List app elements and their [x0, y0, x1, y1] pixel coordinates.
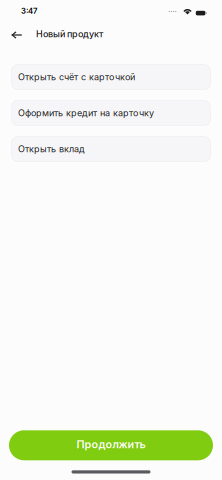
button[interactable]: Продолжить: [9, 430, 213, 460]
staticText: Продолжить: [76, 438, 145, 451]
button[interactable]: Открыть счёт с карточкой: [11, 64, 211, 90]
button[interactable]: Открыть вклад: [11, 136, 211, 162]
staticText: Новый продукт: [36, 28, 103, 39]
staticText: Оформить кредит на карточку: [18, 107, 154, 118]
staticText: 3:47: [21, 6, 37, 16]
button[interactable]: Back: [10, 22, 26, 44]
staticText: Открыть вклад: [18, 143, 85, 154]
button[interactable]: Оформить кредит на карточку: [11, 100, 211, 126]
staticText: Открыть счёт с карточкой: [18, 71, 135, 82]
